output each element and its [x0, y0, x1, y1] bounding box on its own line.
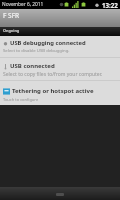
button[interactable]: Close notification shade	[0, 187, 120, 200]
staticText: Ongoing	[3, 28, 20, 33]
staticText: November 6, 2011	[2, 1, 44, 8]
staticText: Select to disable USB debugging.	[3, 47, 70, 53]
other: Alarm set	[95, 3, 99, 7]
staticText: USB debugging connected	[10, 39, 86, 47]
button[interactable]: USB debugging connected	[0, 36, 120, 57]
staticText: Touch to configure	[3, 97, 39, 102]
button[interactable]: USB connected	[0, 58, 120, 80]
staticText: Tethering or hotspot active	[12, 87, 94, 95]
button[interactable]: Tethering or hotspot active	[0, 81, 120, 105]
staticText: F SFR	[3, 11, 20, 20]
staticText: USB connected	[10, 62, 55, 70]
staticText: Select to copy files to/from your comput…	[3, 71, 103, 78]
staticText: 13:22	[102, 1, 118, 9]
